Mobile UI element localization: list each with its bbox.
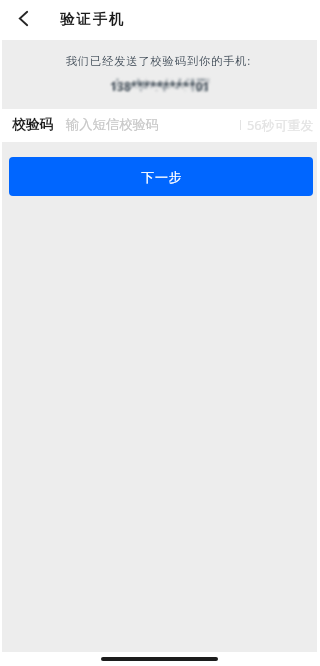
- staticText: 输入短信校验码: [66, 116, 160, 133]
- staticText: 下一步: [141, 169, 183, 185]
- button[interactable]: 下一步: [9, 157, 313, 196]
- staticText: 验证手机: [60, 10, 126, 28]
- staticText: 138**********01: [110, 78, 210, 92]
- button[interactable]: Back: [10, 7, 36, 33]
- staticText: 我们已经发送了校验码到你的手机:: [1, 53, 316, 68]
- staticText: 56秒可重发: [247, 116, 314, 134]
- button[interactable]: 校验码: [2, 109, 317, 142]
- button[interactable]: 56秒可重发: [240, 117, 314, 135]
- staticText: 校验码: [12, 116, 54, 133]
